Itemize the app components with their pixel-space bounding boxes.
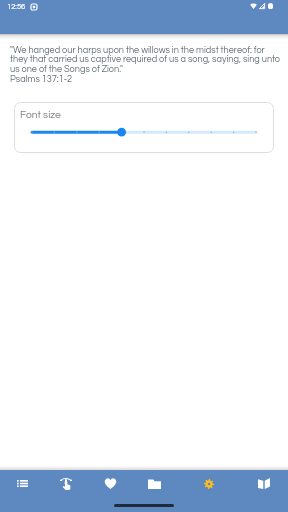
button[interactable]: Font size: [14, 102, 274, 153]
button[interactable]: Read: [242, 470, 286, 497]
button[interactable]: Tap gestures: [44, 470, 88, 497]
button[interactable]: List: [0, 470, 44, 497]
staticText: "We hanged our harps upon the willows in…: [10, 45, 280, 83]
button[interactable]: Settings: [176, 470, 242, 497]
button[interactable]: Favorites: [88, 470, 132, 497]
staticText: Font size: [20, 109, 61, 120]
button[interactable]: Folders: [132, 470, 176, 497]
staticText: 12:56: [7, 3, 26, 11]
